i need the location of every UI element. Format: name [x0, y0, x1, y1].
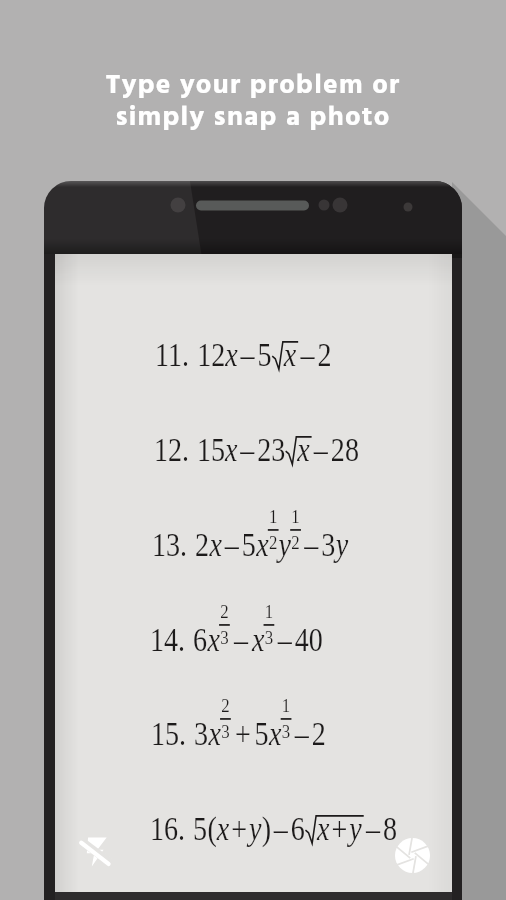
- button[interactable]: Take photo: [395, 838, 430, 873]
- button[interactable]: Flash off: [80, 836, 111, 867]
- staticText: Type your problem or simply snap a photo: [0, 64, 506, 140]
